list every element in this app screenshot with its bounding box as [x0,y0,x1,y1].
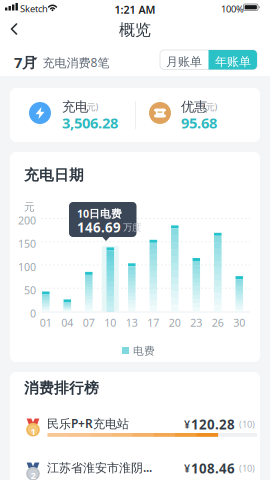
staticText: 7月 [14,52,37,72]
staticText: 200 [18,213,36,227]
staticText: 万度 [123,222,141,233]
staticText: 优惠 [181,98,207,115]
staticText: (10) [239,418,255,430]
staticText: 3,506.28 [62,113,118,132]
staticText: (元) [83,100,98,113]
staticText: Sketch [20,2,48,15]
staticText: 1 [30,425,35,438]
staticText: 10日电费 [77,206,122,221]
staticText: 146.69 [77,218,121,236]
staticText: 17 [147,315,159,330]
staticText: ¥ [184,461,190,475]
staticText: 消费排行榜 [24,379,99,397]
staticText: 26 [212,315,224,330]
staticText: 概览 [119,20,151,40]
staticText: 108.46 [191,459,235,477]
staticText: ¥ [184,417,190,431]
staticText: 充电消费8笔 [42,54,109,70]
staticText: 月账单 [166,54,202,69]
staticText: 0 [30,306,36,320]
staticText: 04 [61,315,73,330]
staticText: 元 [24,200,35,214]
staticText: 23 [190,315,202,330]
staticText: 30 [233,315,245,330]
staticText: 100 [18,260,36,274]
staticText: 01 [40,315,52,330]
staticText: 150 [18,237,36,251]
staticText: 120.28 [191,415,235,433]
staticText: 1:21 AM [114,2,155,17]
staticText: 江苏省淮安市淮阴... [47,459,152,475]
staticText: 充电 [62,98,88,115]
staticText: 13 [126,315,138,330]
staticText: 50 [24,283,36,297]
staticText: 100% [221,3,244,15]
staticText: 20 [169,315,181,330]
staticText: 95.68 [181,113,217,132]
staticText: 电费 [133,344,155,358]
staticText: 07 [83,315,95,330]
staticText: 民乐P+R充电站 [47,415,129,431]
staticText: 年账单 [215,54,251,69]
staticText: 2 [30,469,35,480]
staticText: (元) [202,100,217,113]
staticText: (10) [239,462,255,474]
staticText: 10 [104,315,116,330]
staticText: 充电日期 [24,166,84,184]
